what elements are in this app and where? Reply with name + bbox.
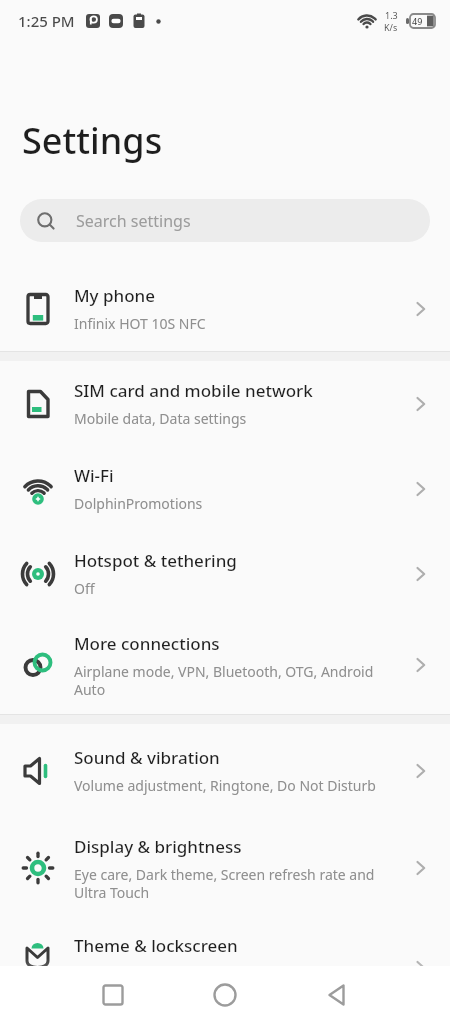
staticText: Display & brightness bbox=[74, 835, 242, 858]
staticText: Sound & vibration bbox=[74, 746, 220, 769]
staticText: Infinix HOT 10S NFC bbox=[74, 314, 206, 333]
staticText: 1:25 PM bbox=[18, 11, 75, 31]
button[interactable] bbox=[281, 966, 393, 1024]
button[interactable]: Theme & lockscreen bbox=[0, 923, 450, 1012]
button[interactable]: Hotspot & tethering bbox=[0, 531, 450, 616]
button[interactable]: Wi-Fi bbox=[0, 446, 450, 531]
staticText: Wi-Fi bbox=[74, 464, 114, 487]
button[interactable]: Search settings bbox=[20, 199, 430, 242]
staticText: Search settings bbox=[76, 210, 191, 232]
staticText: Volume adjustment, Ringtone, Do Not Dist… bbox=[74, 776, 376, 795]
staticText: 1.3 bbox=[385, 9, 398, 21]
staticText: Settings bbox=[22, 116, 163, 165]
staticText: Mobile data, Data settings bbox=[74, 409, 247, 428]
button[interactable]: My phone bbox=[0, 266, 450, 351]
button[interactable] bbox=[169, 966, 281, 1024]
button[interactable]: Display & brightness bbox=[0, 813, 450, 923]
button[interactable]: Sound & vibration bbox=[0, 728, 450, 813]
button[interactable] bbox=[57, 966, 169, 1024]
staticText: More connections bbox=[74, 632, 220, 655]
staticText: Airplane mode, VPN, Bluetooth, OTG, Andr… bbox=[74, 662, 374, 699]
staticText: Eye care, Dark theme, Screen refresh rat… bbox=[74, 865, 375, 902]
staticText: Off bbox=[74, 579, 95, 598]
button[interactable]: More connections bbox=[0, 616, 450, 714]
staticText: SIM card and mobile network bbox=[74, 379, 313, 402]
button[interactable]: SIM card and mobile network bbox=[0, 361, 450, 446]
staticText: Theme & lockscreen bbox=[74, 934, 238, 957]
staticText: Launcher themes, live wallpaper, magazin… bbox=[74, 964, 416, 1001]
staticText: K/s bbox=[384, 21, 398, 33]
staticText: 49 bbox=[412, 15, 423, 27]
staticText: Hotspot & tethering bbox=[74, 549, 237, 572]
staticText: My phone bbox=[74, 284, 156, 307]
staticText: DolphinPromotions bbox=[74, 494, 203, 513]
